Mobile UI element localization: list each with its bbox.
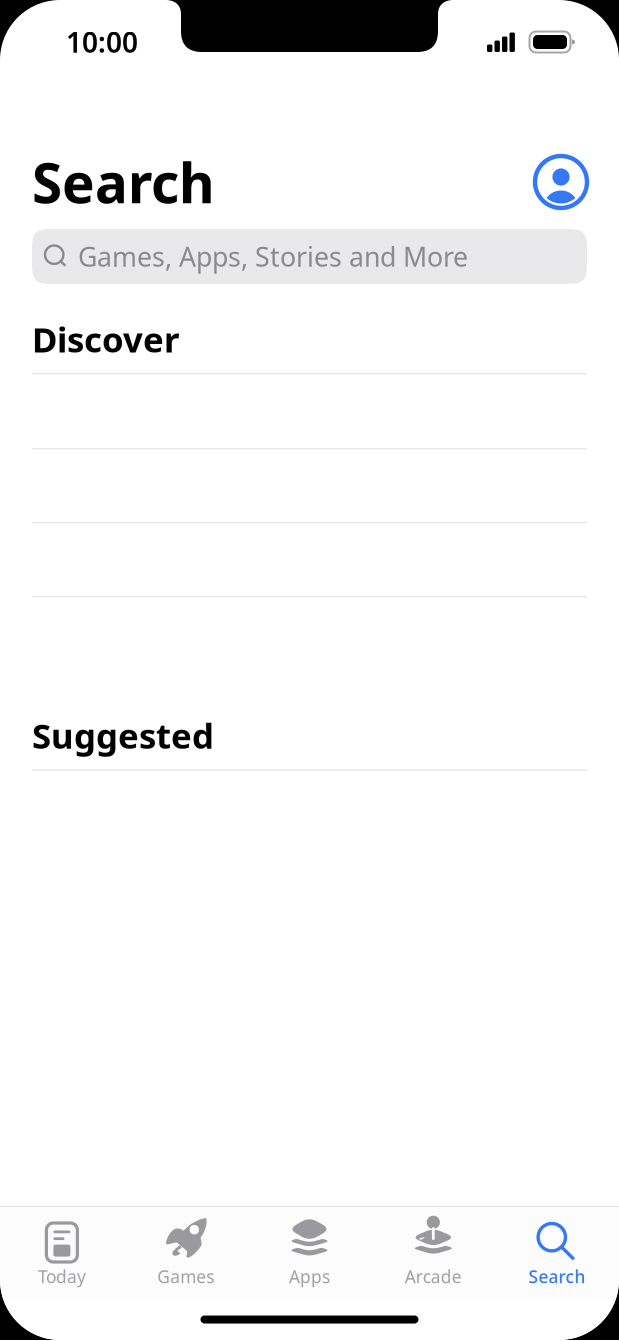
- staticText: Arcade: [405, 1265, 462, 1288]
- staticText: Discover: [32, 316, 179, 362]
- button[interactable]: Today: [0, 1212, 124, 1294]
- button[interactable]: Search: [495, 1212, 619, 1294]
- staticText: Games, Apps, Stories and More: [78, 239, 468, 274]
- staticText: Search: [529, 1265, 586, 1288]
- button[interactable]: Games, Apps, Stories and More: [32, 229, 587, 284]
- staticText: Suggested: [32, 712, 214, 758]
- staticText: 10:00: [66, 23, 138, 61]
- staticText: Games: [157, 1265, 214, 1288]
- button[interactable]: Apps: [248, 1212, 371, 1294]
- staticText: Apps: [289, 1265, 330, 1288]
- staticText: Today: [38, 1265, 86, 1288]
- button[interactable]: Account: [535, 156, 587, 208]
- button[interactable]: Arcade: [371, 1212, 495, 1294]
- button[interactable]: Games: [124, 1212, 248, 1294]
- staticText: Search: [32, 146, 215, 218]
